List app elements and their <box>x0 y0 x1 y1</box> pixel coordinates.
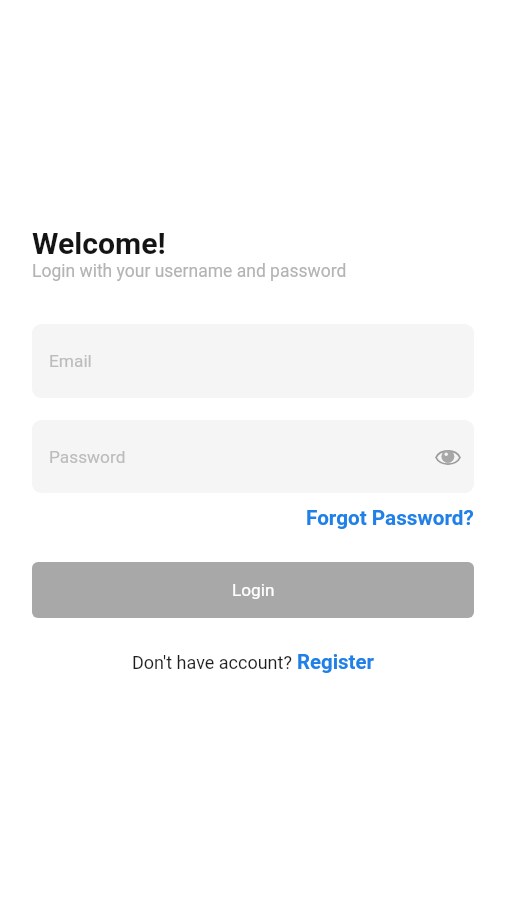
button[interactable]: Forgot Password? <box>306 506 474 530</box>
button[interactable]: Email <box>32 324 474 398</box>
staticText: Don't have account? <box>132 652 297 673</box>
button[interactable]: Password <box>32 420 474 493</box>
staticText: Login with your username and password <box>32 261 347 282</box>
button[interactable]: Show password <box>431 440 465 474</box>
button[interactable]: Login <box>32 562 474 618</box>
staticText: Welcome! <box>32 226 166 261</box>
staticText: Email <box>49 351 92 371</box>
staticText: Password <box>49 447 126 467</box>
button[interactable]: Register <box>297 650 374 674</box>
staticText: Login <box>232 580 275 600</box>
